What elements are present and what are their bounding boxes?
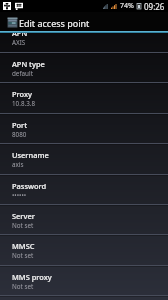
button[interactable]: Username [0,143,168,173]
staticText: 10.8.3.8 [12,99,36,108]
other: New message [15,2,23,10]
button[interactable]: Server [0,204,168,234]
staticText: Not set [12,221,34,230]
staticText: Port [12,120,28,130]
other: USB connected [3,2,11,10]
staticText: MMSC [12,241,35,251]
staticText: Password [12,181,47,191]
staticText: 09:26 [144,1,165,12]
staticText: Not set [12,251,34,260]
other: Access point settings icon [7,17,18,28]
button[interactable]: MMS port [0,295,168,300]
staticText: •••••• [12,191,27,200]
staticText: AXIS [12,38,26,47]
staticText: MMS proxy [12,272,52,282]
button[interactable]: Proxy [0,82,168,112]
staticText: default [12,69,33,78]
staticText: Username [12,150,49,160]
button[interactable]: Password [0,174,168,204]
staticText: Proxy [12,89,32,99]
staticText: APN type [12,59,45,69]
staticText: axis [12,160,24,169]
button[interactable]: MMS proxy [0,265,168,295]
button[interactable]: APN type [0,52,168,82]
staticText: Server [12,211,35,221]
button[interactable]: APN [0,21,168,51]
staticText: 74% [120,1,134,11]
staticText: Not set [12,282,34,291]
staticText: APN [12,28,28,38]
staticText: 8080 [12,130,27,139]
button[interactable]: MMSC [0,234,168,264]
staticText: Edit access point [19,17,90,29]
button[interactable]: Port [0,113,168,143]
